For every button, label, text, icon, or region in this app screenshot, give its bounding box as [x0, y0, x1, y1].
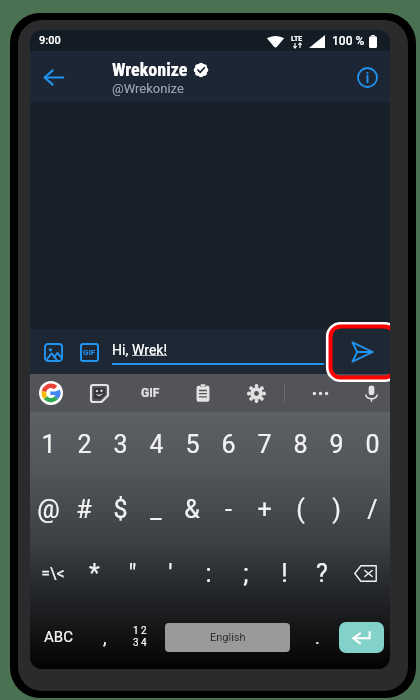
- button[interactable]: 9: [318, 412, 354, 477]
- button[interactable]: :: [189, 541, 227, 605]
- button[interactable]: .: [302, 609, 332, 665]
- button[interactable]: +: [246, 477, 282, 541]
- button[interactable]: GIF: [73, 336, 105, 368]
- button[interactable]: /: [354, 477, 390, 541]
- staticText: ;: [243, 559, 249, 588]
- staticText: 9: [329, 430, 344, 459]
- staticText: English: [210, 631, 246, 644]
- button[interactable]: Clipboard: [187, 377, 219, 409]
- staticText: @Wrekonize: [112, 81, 184, 96]
- button[interactable]: 8: [282, 412, 318, 477]
- button[interactable]: &: [174, 477, 210, 541]
- button[interactable]: ': [151, 541, 189, 605]
- button[interactable]: Google Search: [35, 377, 67, 409]
- button[interactable]: *: [75, 541, 113, 605]
- staticText: _: [150, 495, 162, 524]
- button[interactable]: Numbers: [122, 609, 158, 665]
- button[interactable]: 2: [66, 412, 102, 477]
- staticText: LTE: [291, 35, 303, 43]
- staticText: Wrek!: [132, 342, 168, 358]
- button[interactable]: ?: [303, 541, 341, 605]
- staticText: ": [128, 559, 137, 588]
- staticText: 5: [185, 430, 200, 459]
- button[interactable]: English: [165, 623, 290, 652]
- button[interactable]: 1: [30, 412, 66, 477]
- button[interactable]: Settings: [240, 377, 272, 409]
- staticText: -: [225, 495, 232, 524]
- button[interactable]: GIF: [131, 377, 169, 409]
- staticText: #: [76, 495, 92, 524]
- button[interactable]: Voice input: [355, 377, 387, 409]
- button[interactable]: 0: [354, 412, 390, 477]
- button[interactable]: More options: [304, 377, 336, 409]
- button[interactable]: ,: [88, 609, 122, 665]
- button[interactable]: (: [282, 477, 318, 541]
- staticText: ?: [316, 559, 328, 588]
- staticText: /: [367, 495, 378, 524]
- button[interactable]: @: [30, 477, 66, 541]
- button[interactable]: 4: [138, 412, 174, 477]
- staticText: ): [332, 495, 341, 524]
- button[interactable]: Stickers: [83, 377, 115, 409]
- button[interactable]: _: [138, 477, 174, 541]
- staticText: Wrekonize: [112, 59, 188, 80]
- button[interactable]: ): [318, 477, 354, 541]
- staticText: .: [315, 627, 320, 648]
- button[interactable]: Send: [330, 329, 390, 374]
- staticText: &: [184, 495, 200, 524]
- button[interactable]: Attach image: [37, 336, 69, 368]
- staticText: @: [37, 495, 60, 524]
- staticText: 1: [41, 430, 56, 459]
- button[interactable]: $: [102, 477, 138, 541]
- staticText: 8: [293, 430, 308, 459]
- staticText: +: [257, 495, 272, 524]
- button[interactable]: Info: [351, 61, 383, 93]
- button[interactable]: ": [113, 541, 151, 605]
- staticText: 6: [221, 430, 236, 459]
- staticText: ABC: [44, 628, 73, 646]
- staticText: 100 %: [332, 34, 365, 48]
- button[interactable]: =\<: [30, 541, 75, 605]
- staticText: (: [296, 495, 305, 524]
- button[interactable]: 5: [174, 412, 210, 477]
- button[interactable]: #: [66, 477, 102, 541]
- staticText: 3 4: [133, 637, 147, 649]
- button[interactable]: Enter: [339, 622, 384, 653]
- staticText: GIF: [83, 348, 96, 357]
- staticText: =\<: [41, 564, 65, 583]
- staticText: GIF: [141, 386, 160, 400]
- staticText: 0: [365, 430, 380, 459]
- button[interactable]: ;: [227, 541, 265, 605]
- button[interactable]: 6: [210, 412, 246, 477]
- button[interactable]: !: [265, 541, 303, 605]
- staticText: 3: [113, 430, 128, 459]
- staticText: $: [113, 495, 128, 524]
- button[interactable]: ABC: [34, 609, 82, 665]
- button[interactable]: Backspace: [341, 541, 390, 605]
- staticText: 7: [257, 430, 272, 459]
- staticText: ,: [103, 627, 107, 648]
- staticText: :: [205, 559, 212, 588]
- staticText: 4: [149, 430, 164, 459]
- staticText: *: [89, 559, 100, 588]
- button[interactable]: Back: [35, 59, 71, 95]
- staticText: ': [168, 559, 173, 588]
- staticText: Hi,: [112, 342, 132, 358]
- staticText: 9:00: [39, 34, 61, 47]
- staticText: 2: [77, 430, 92, 459]
- staticText: !: [281, 559, 288, 588]
- button[interactable]: -: [210, 477, 246, 541]
- staticText: 1 2: [133, 625, 147, 637]
- button[interactable]: 7: [246, 412, 282, 477]
- button[interactable]: 3: [102, 412, 138, 477]
